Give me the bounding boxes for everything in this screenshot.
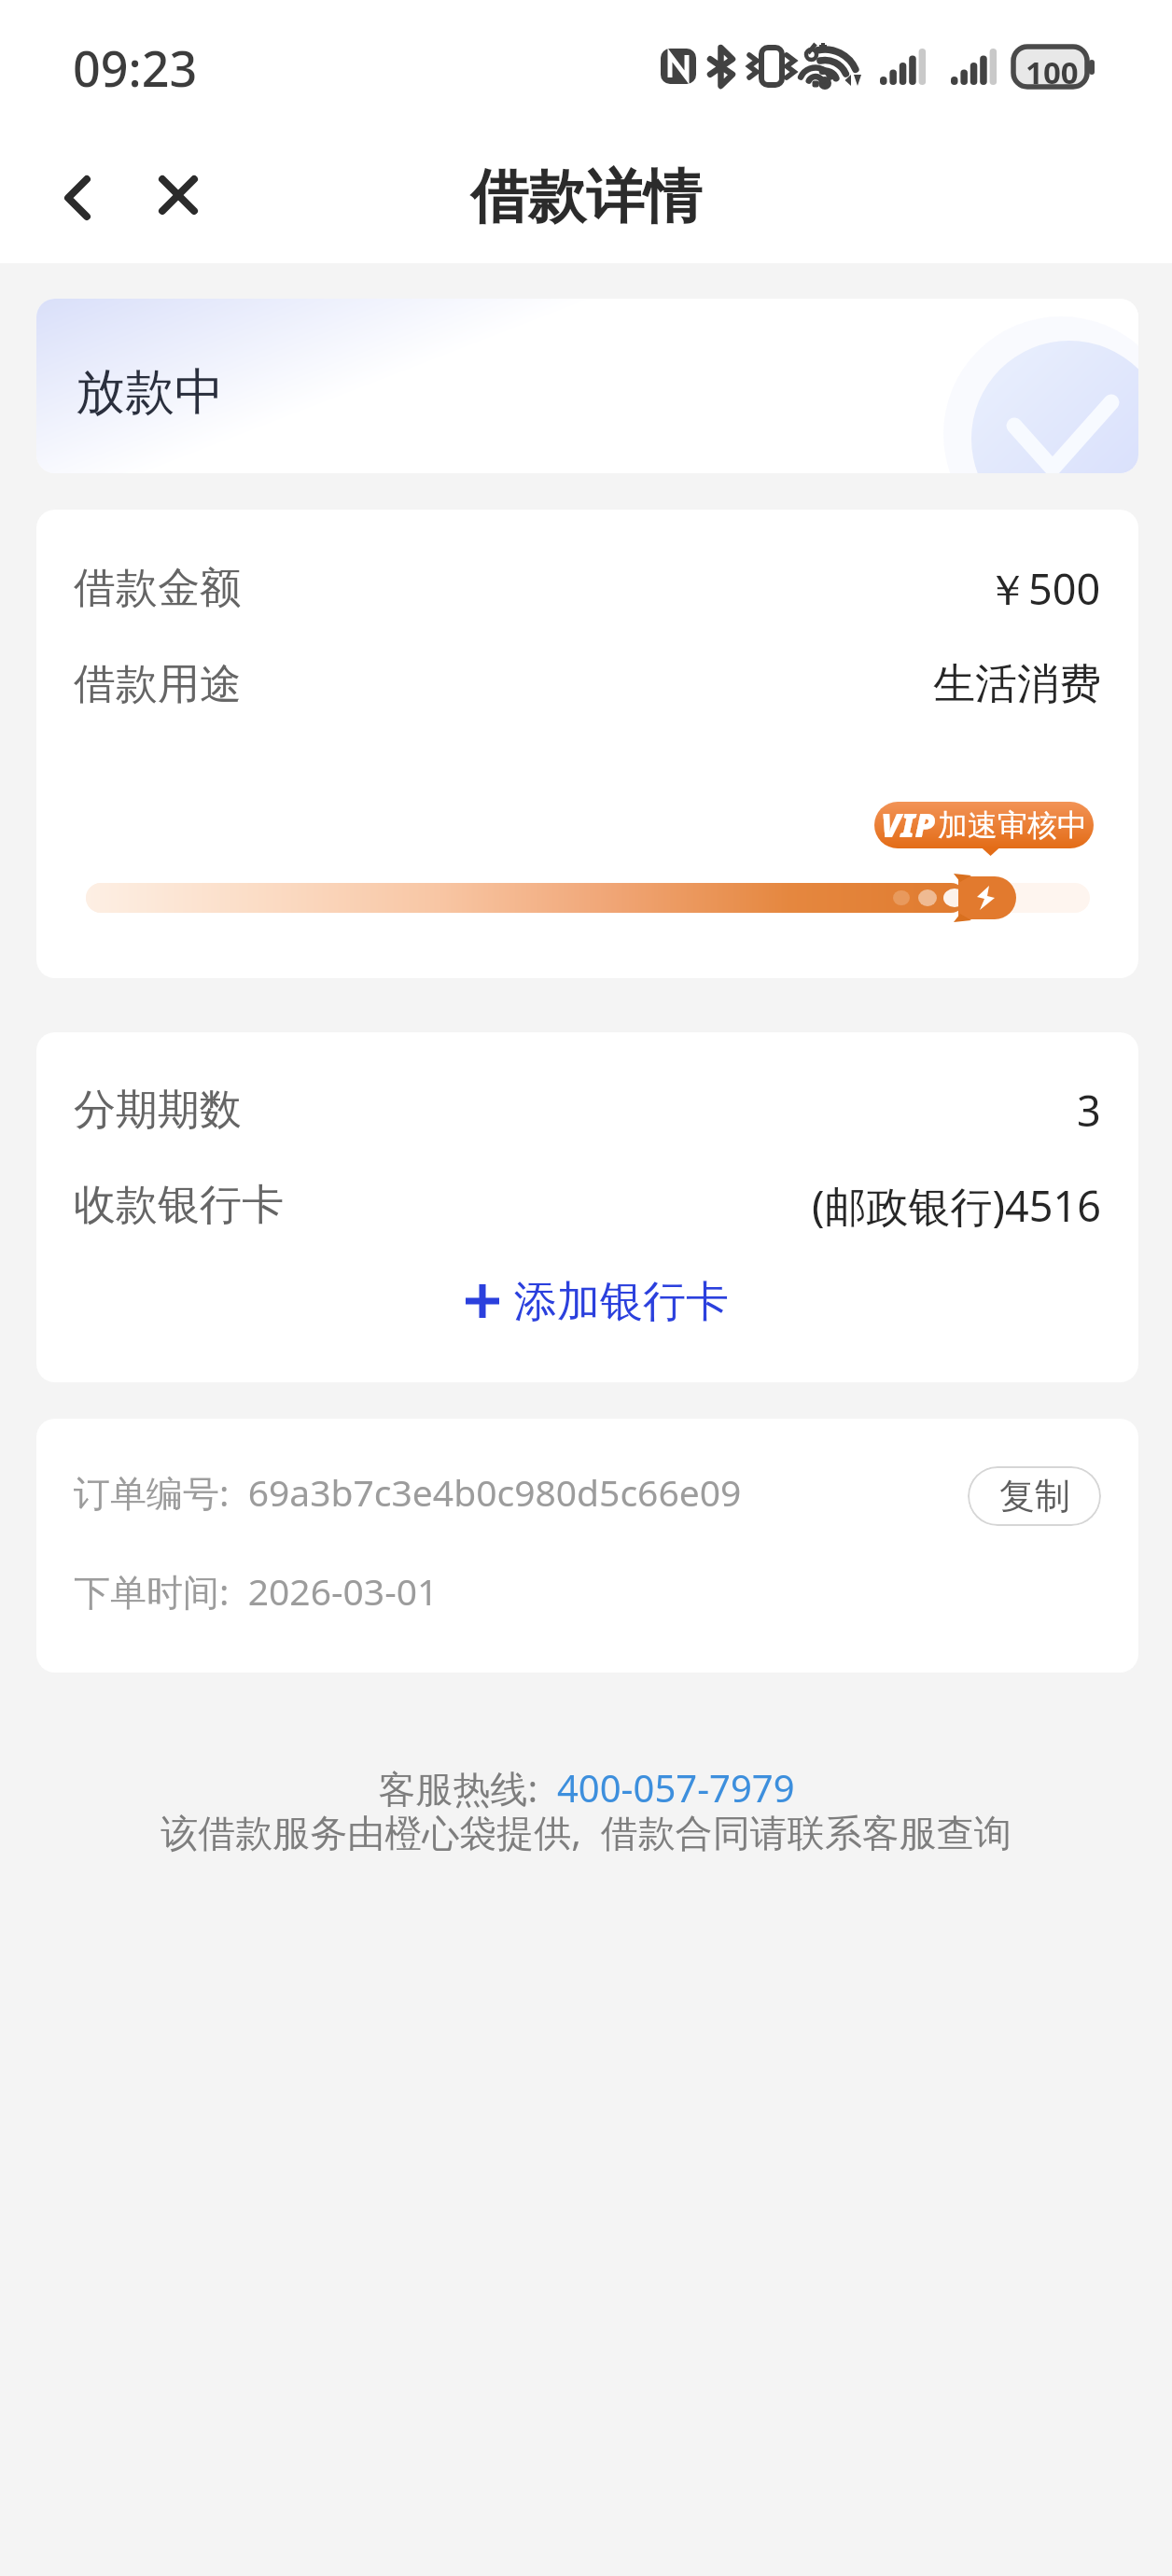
button[interactable]: 客服热线: 400-057-7979 bbox=[378, 1762, 795, 1813]
staticText: 收款银行卡 bbox=[74, 1179, 284, 1232]
button[interactable]: Back bbox=[43, 161, 112, 235]
staticText: (邮政银行)4516 bbox=[812, 1177, 1101, 1233]
button[interactable]: 添加银行卡 bbox=[453, 1266, 742, 1337]
staticText: 添加银行卡 bbox=[514, 1275, 729, 1327]
staticText: 3 bbox=[1077, 1082, 1101, 1138]
staticText: 订单编号: 69a3b7c3e4b0c980d5c66e09 bbox=[74, 1467, 742, 1517]
staticText: 加速审核中 bbox=[938, 806, 1087, 844]
staticText: 借款用途 bbox=[74, 658, 242, 711]
staticText: ￥500 bbox=[986, 560, 1101, 616]
staticText: 下单时间: 2026-03-01 bbox=[74, 1566, 439, 1616]
staticText: 100 bbox=[1025, 51, 1079, 93]
staticText: 放款中 bbox=[76, 361, 224, 424]
staticText: 分期期数 bbox=[74, 1084, 242, 1137]
staticText: 借款金额 bbox=[74, 562, 242, 615]
button[interactable]: 放款中 bbox=[36, 299, 1138, 473]
button[interactable]: 复制 bbox=[968, 1466, 1101, 1526]
staticText: VIP bbox=[881, 803, 936, 847]
staticText: 生活消费 bbox=[933, 658, 1101, 711]
button[interactable]: Close bbox=[144, 158, 213, 232]
staticText: 复制 bbox=[999, 1474, 1070, 1519]
staticText: 借款详情 bbox=[470, 161, 702, 233]
staticText: 该借款服务由橙心袋提供, 借款合同请联系客服查询 bbox=[160, 1806, 1012, 1857]
staticText: 09:23 bbox=[73, 35, 198, 101]
